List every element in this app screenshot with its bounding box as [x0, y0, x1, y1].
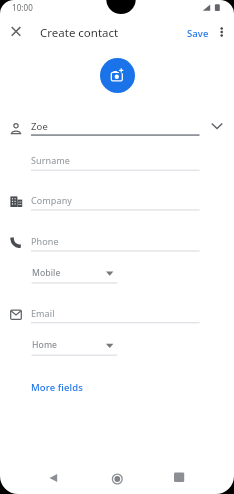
staticText: Surname [31, 154, 71, 166]
staticText: Save [187, 27, 209, 40]
button[interactable] [100, 58, 135, 93]
staticText: 10:00 [12, 2, 33, 13]
button[interactable] [26, 336, 121, 358]
button[interactable] [214, 24, 230, 40]
staticText: Create contact [40, 25, 119, 41]
button[interactable] [0, 190, 234, 214]
button[interactable]: More fields [31, 378, 181, 396]
button[interactable] [0, 303, 234, 327]
button[interactable] [0, 231, 234, 255]
staticText: Company [31, 194, 72, 206]
staticText: Zoe [31, 120, 48, 133]
button[interactable] [210, 120, 224, 134]
button[interactable]: Save [187, 24, 217, 42]
staticText: Phone [31, 235, 59, 247]
staticText: Home [32, 339, 58, 351]
button[interactable] [38, 463, 68, 493]
button[interactable] [164, 462, 194, 492]
button[interactable] [0, 116, 234, 140]
button[interactable] [0, 150, 234, 174]
button[interactable] [6, 22, 26, 42]
button[interactable] [102, 464, 132, 494]
button[interactable] [26, 264, 121, 286]
staticText: More fields [31, 381, 83, 394]
staticText: Email [31, 307, 55, 319]
staticText: Mobile [32, 267, 61, 279]
